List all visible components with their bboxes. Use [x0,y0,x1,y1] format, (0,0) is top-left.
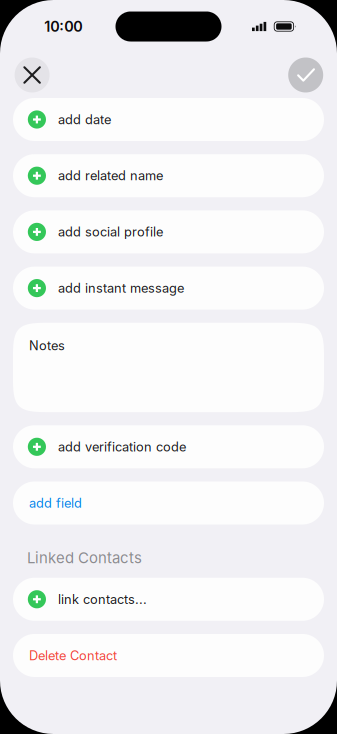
button[interactable]: add date [13,98,324,141]
staticText: add date [58,112,111,127]
staticText: add instant message [58,280,184,296]
button[interactable]: Delete Contact [13,634,324,677]
staticText: add social profile [58,224,163,240]
staticText: add verification code [58,439,186,455]
button[interactable]: add social profile [13,210,324,253]
button[interactable]: add verification code [13,425,324,468]
button[interactable]: add related name [13,154,324,197]
button[interactable]: add field [13,481,324,524]
button[interactable]: link contacts... [13,578,324,621]
staticText: Notes [29,338,65,353]
button[interactable]: Done [288,57,323,92]
staticText: 10:00 [44,18,82,35]
button[interactable]: add instant message [13,267,324,310]
button[interactable]: Cancel [15,57,50,92]
staticText: Linked Contacts [27,549,142,567]
button[interactable]: Notes [13,323,324,412]
staticText: link contacts... [58,591,147,607]
staticText: Delete Contact [29,648,117,663]
staticText: add related name [58,168,163,183]
staticText: add field [29,495,82,511]
